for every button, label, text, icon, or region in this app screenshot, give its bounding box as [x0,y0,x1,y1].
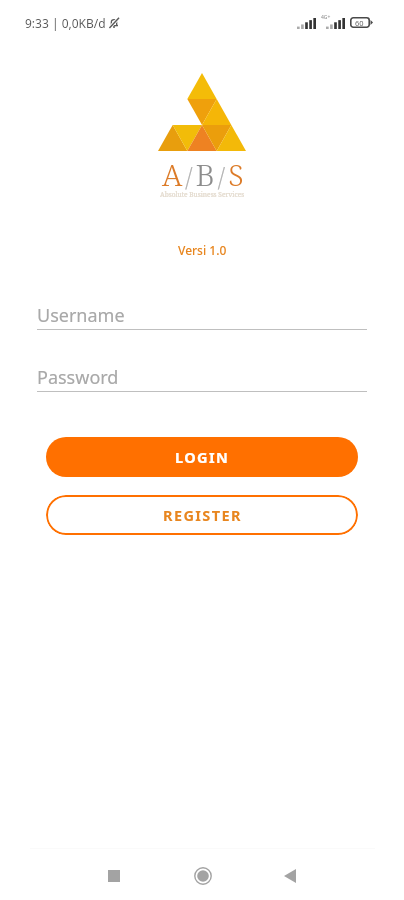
staticText: 9:33 | 0,0KB/d [25,15,106,31]
staticText: Absolute Business Services [160,190,245,199]
button[interactable]: LOGIN [46,437,358,477]
staticText: Versi 1.0 [178,242,227,258]
staticText: Password [37,365,119,390]
staticText: REGISTER [163,505,242,525]
staticText: Username [37,303,125,328]
button[interactable]: Home [181,854,225,898]
staticText: 4G+ [321,14,331,21]
staticText: A/B/S [162,154,247,195]
button[interactable]: Recents [92,854,136,898]
staticText: 60 [355,18,364,28]
button[interactable]: REGISTER [46,495,358,535]
button[interactable]: Back [268,854,312,898]
staticText: LOGIN [175,447,230,467]
